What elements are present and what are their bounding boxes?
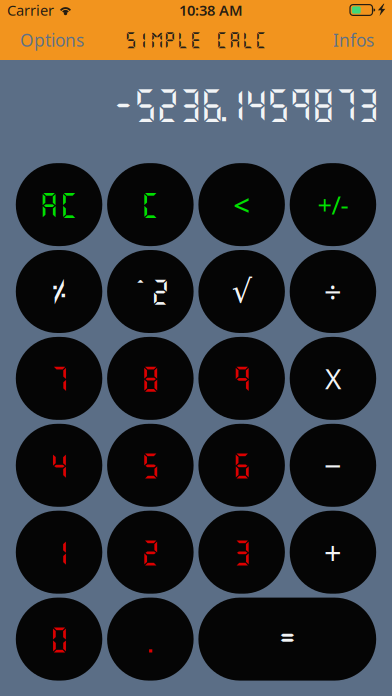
staticText: 1 <box>49 536 69 568</box>
staticText: 3 <box>232 536 252 568</box>
staticText: 5 <box>140 449 160 482</box>
staticText: Infos <box>333 28 374 51</box>
button[interactable]: 5 <box>107 424 194 507</box>
button[interactable]: AC <box>16 163 102 246</box>
staticText: % <box>49 274 70 309</box>
button[interactable]: 2 <box>107 511 194 594</box>
button[interactable]: 0 <box>16 598 102 681</box>
staticText: AC <box>39 188 79 221</box>
button[interactable]: . <box>107 598 194 681</box>
staticText: 9 <box>232 362 252 395</box>
button[interactable]: % <box>16 250 102 333</box>
button[interactable]: Infos <box>323 20 392 60</box>
button[interactable]: 8 <box>107 337 194 420</box>
button[interactable]: 1 <box>16 511 102 594</box>
button[interactable]: + <box>290 511 376 594</box>
button[interactable]: +/- <box>290 163 376 246</box>
staticText: C <box>140 188 160 221</box>
button[interactable]: < <box>198 163 285 246</box>
button[interactable]: C <box>107 163 194 246</box>
staticText: X <box>325 360 341 397</box>
button[interactable]: = <box>198 598 376 681</box>
staticText: 6 <box>232 449 252 482</box>
staticText: 4 <box>49 449 69 482</box>
button[interactable]: Options <box>0 20 94 60</box>
staticText: 0 <box>49 623 69 655</box>
button[interactable]: X <box>290 337 376 420</box>
button[interactable]: 6 <box>198 424 285 507</box>
staticText: +/- <box>317 188 348 221</box>
staticText: = <box>277 622 298 656</box>
button[interactable]: ÷ <box>290 250 376 333</box>
staticText: 10:38 AM <box>179 0 243 20</box>
button[interactable]: √ <box>198 250 285 333</box>
staticText: + <box>324 532 342 572</box>
staticText: -5236.1459873 <box>110 84 381 125</box>
staticText: ^2 <box>130 275 170 308</box>
staticText: 8 <box>140 362 160 395</box>
button[interactable]: − <box>290 424 376 507</box>
staticText: . <box>149 623 152 655</box>
staticText: Options <box>20 28 84 51</box>
staticText: SIMPLE CALC <box>124 30 267 50</box>
staticText: √ <box>232 273 252 310</box>
button[interactable]: 4 <box>16 424 102 507</box>
staticText: ÷ <box>324 271 342 312</box>
button[interactable]: ^2 <box>107 250 194 333</box>
button[interactable]: 3 <box>198 511 285 594</box>
staticText: Carrier <box>7 0 54 20</box>
staticText: < <box>233 185 250 224</box>
staticText: − <box>324 445 342 486</box>
staticText: 2 <box>140 536 160 568</box>
staticText: 7 <box>49 362 69 395</box>
button[interactable]: 7 <box>16 337 102 420</box>
button[interactable]: 9 <box>198 337 285 420</box>
